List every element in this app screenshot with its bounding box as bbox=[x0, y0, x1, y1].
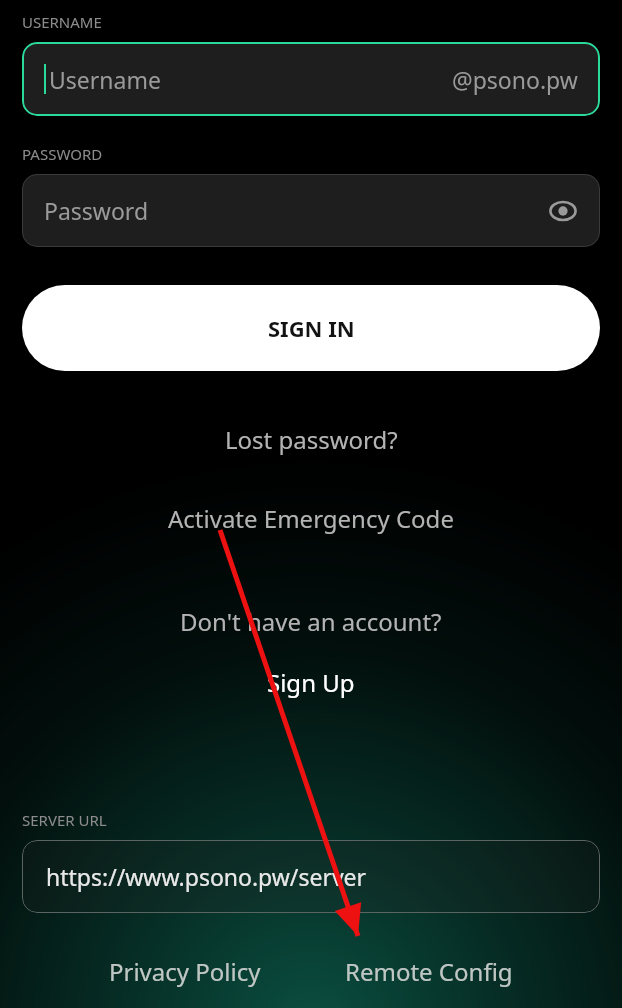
button[interactable]: Activate Emergency Code bbox=[0, 502, 622, 535]
button[interactable]: https://www.psono.pw/server bbox=[22, 840, 600, 913]
button[interactable]: Remote Config bbox=[335, 949, 523, 994]
staticText: USERNAME bbox=[22, 12, 102, 32]
button[interactable]: Username bbox=[22, 42, 600, 116]
staticText: Password bbox=[44, 195, 544, 226]
button[interactable]: Show password bbox=[544, 192, 582, 230]
button[interactable]: Sign Up bbox=[0, 666, 622, 699]
staticText: Username bbox=[49, 64, 452, 95]
button[interactable]: Privacy Policy bbox=[99, 949, 271, 994]
staticText: Privacy Policy bbox=[109, 955, 261, 988]
staticText: Sign Up bbox=[267, 666, 355, 699]
staticText: https://www.psono.pw/server bbox=[46, 861, 367, 892]
staticText: Activate Emergency Code bbox=[168, 502, 454, 535]
staticText: SERVER URL bbox=[22, 810, 107, 830]
button[interactable]: Lost password? bbox=[0, 423, 622, 456]
staticText: PASSWORD bbox=[22, 144, 103, 164]
staticText: @psono.pw bbox=[452, 64, 578, 95]
button[interactable]: Password bbox=[22, 174, 600, 247]
staticText: Remote Config bbox=[345, 955, 513, 988]
staticText: Lost password? bbox=[225, 423, 398, 456]
button[interactable]: SIGN IN bbox=[22, 285, 600, 371]
button[interactable]: Don't have an account? bbox=[0, 605, 622, 638]
staticText: Don't have an account? bbox=[180, 605, 442, 638]
staticText: SIGN IN bbox=[268, 313, 355, 343]
